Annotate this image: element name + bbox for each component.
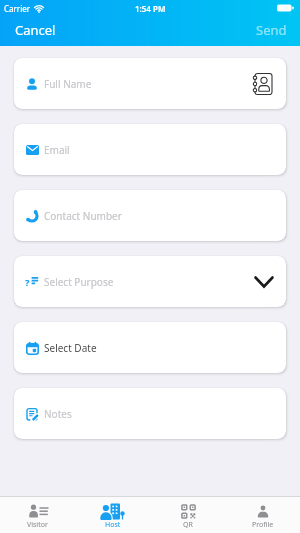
- button[interactable]: Cancel: [15, 21, 56, 39]
- staticText: Host: [105, 520, 121, 530]
- button[interactable]: Email: [14, 124, 286, 175]
- button[interactable]: Send: [256, 21, 287, 39]
- staticText: 1:54 PM: [135, 3, 166, 14]
- button[interactable]: ?: [14, 256, 286, 307]
- button[interactable]: Full Name: [14, 58, 286, 109]
- button[interactable]: Host: [75, 497, 150, 533]
- staticText: Notes: [44, 407, 72, 421]
- button[interactable]: Contact Number: [14, 190, 286, 241]
- staticText: QR: [183, 520, 193, 530]
- button[interactable]: Select Date: [14, 322, 286, 373]
- staticText: Email: [44, 143, 70, 157]
- button[interactable]: Visitor: [0, 497, 75, 533]
- staticText: Carrier: [4, 3, 31, 14]
- staticText: Contact Number: [44, 209, 122, 223]
- staticText: Profile: [252, 520, 274, 530]
- staticText: ?: [25, 276, 30, 289]
- staticText: Select Date: [44, 341, 97, 355]
- button[interactable]: Notes: [14, 388, 286, 439]
- button[interactable]: QR: [150, 497, 225, 533]
- staticText: Visitor: [27, 520, 48, 530]
- button[interactable]: [251, 72, 275, 96]
- staticText: Full Name: [44, 77, 92, 91]
- staticText: Select Purpose: [44, 275, 114, 289]
- button[interactable]: Profile: [225, 497, 300, 533]
